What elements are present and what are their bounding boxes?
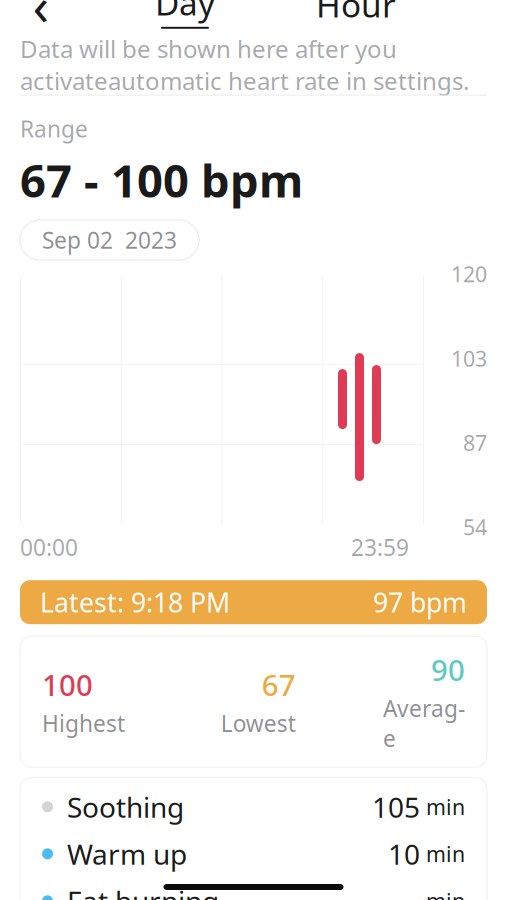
- staticText: Fat burning: [67, 882, 219, 900]
- staticText: Lowest: [221, 708, 296, 738]
- button[interactable]: Sep 02 2023: [20, 220, 199, 260]
- staticText: min: [420, 793, 465, 821]
- button[interactable]: Warm up: [20, 830, 487, 877]
- staticText: 105: [372, 788, 420, 825]
- staticText: 67: [262, 665, 296, 704]
- staticText: 97 bpm: [373, 584, 467, 620]
- staticText: 00:00: [20, 532, 78, 562]
- staticText: Average: [383, 693, 465, 753]
- staticText: 120: [451, 260, 487, 288]
- staticText: min: [420, 887, 465, 900]
- staticText: 87: [463, 429, 487, 457]
- staticText: Warm up: [67, 835, 187, 872]
- staticText: Sep 02 2023: [42, 225, 177, 255]
- staticText: 90: [431, 650, 465, 689]
- staticText: 103: [451, 344, 487, 372]
- staticText: 100: [42, 665, 93, 704]
- staticText: Day: [155, 0, 215, 25]
- staticText: Highest: [42, 708, 125, 738]
- staticText: 10: [388, 835, 420, 872]
- button[interactable]: Latest: 9:18 PM: [20, 580, 487, 624]
- staticText: 54: [463, 513, 487, 541]
- staticText: Soothing: [67, 788, 184, 825]
- button[interactable]: Back: [14, 0, 68, 27]
- staticText: Data will be shown here after you activa…: [20, 33, 469, 96]
- staticText: 67 - 100 bpm: [20, 150, 303, 210]
- button[interactable]: Soothing: [20, 783, 487, 830]
- button[interactable]: Hour: [302, 0, 410, 31]
- staticText: ‹: [32, 0, 49, 40]
- staticText: Range: [20, 114, 88, 144]
- button[interactable]: Fat burning: [20, 877, 487, 900]
- button[interactable]: Day: [141, 0, 229, 33]
- staticText: 23:59: [351, 532, 409, 562]
- staticText: Latest: 9:18 PM: [40, 584, 230, 620]
- staticText: Hour: [316, 0, 396, 27]
- staticText: min: [420, 840, 465, 868]
